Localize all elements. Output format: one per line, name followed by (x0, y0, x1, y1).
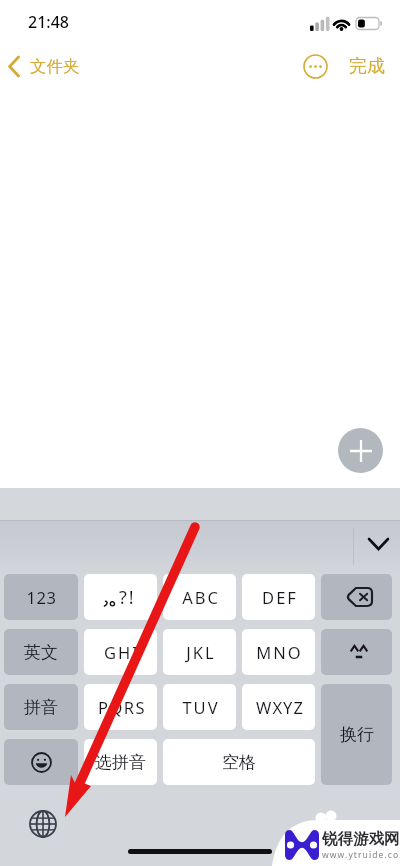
staticText: 文件夹 (30, 56, 80, 77)
staticText: ?! (119, 585, 136, 610)
staticText: 完成 (349, 55, 385, 78)
staticText: JKL (186, 641, 216, 663)
button[interactable]: punct (84, 574, 157, 620)
button[interactable]: More options (303, 54, 328, 79)
staticText: ABC (182, 586, 220, 608)
button[interactable]: DEF (242, 574, 315, 620)
button[interactable]: emoji (4, 739, 78, 785)
button[interactable]: TUV (163, 684, 236, 730)
button[interactable]: 123 (4, 574, 78, 620)
staticText: TUV (182, 696, 220, 718)
button[interactable]: 选拼音 (84, 739, 157, 785)
staticText: 拼音 (24, 697, 58, 718)
button[interactable]: GHI (84, 629, 157, 675)
staticText: DEF (262, 586, 298, 608)
button[interactable]: JKL (163, 629, 236, 675)
button[interactable]: 换行 (321, 684, 392, 785)
button[interactable]: 文件夹 (0, 56, 90, 77)
staticText: 锐得游戏网 (322, 829, 400, 849)
button[interactable]: Collapse keyboard (358, 522, 398, 564)
button[interactable]: 拼音 (4, 684, 78, 730)
button[interactable]: MNO (242, 629, 315, 675)
button[interactable]: PQRS (84, 684, 157, 730)
button[interactable]: 完成 (349, 55, 385, 78)
staticText: 换行 (340, 724, 374, 745)
staticText: 123 (26, 586, 57, 608)
staticText: 空格 (222, 752, 256, 773)
button[interactable]: 空格 (163, 739, 315, 785)
staticText: GHI (104, 641, 140, 663)
staticText: 选拼音 (95, 752, 146, 773)
staticText: PQRS (98, 696, 146, 718)
staticText: WXYZ (256, 696, 304, 718)
button[interactable]: Switch keyboard (25, 806, 61, 842)
button[interactable]: emoticon (321, 629, 392, 675)
staticText: 英文 (24, 642, 58, 663)
staticText: MNO (256, 641, 303, 663)
button[interactable]: 英文 (4, 629, 78, 675)
button[interactable]: ABC (163, 574, 236, 620)
button[interactable]: del (321, 574, 392, 620)
staticText: 21:48 (28, 11, 69, 33)
staticText: www.ytruide.com (322, 849, 400, 861)
button[interactable]: WXYZ (242, 684, 315, 730)
button[interactable]: Add (338, 428, 383, 473)
